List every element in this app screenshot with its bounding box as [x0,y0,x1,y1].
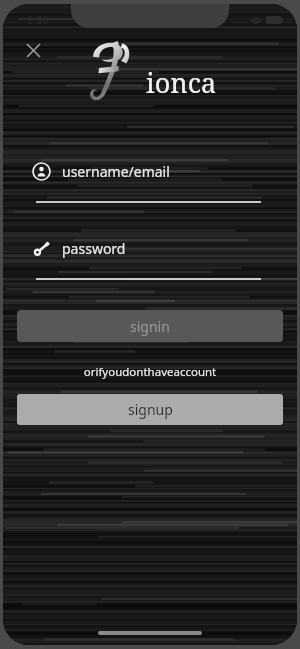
button[interactable]: signin [17,310,283,342]
staticText: password [62,239,126,258]
button[interactable]: username/email [3,154,297,188]
staticText: orifyoudonthaveaccount [3,364,297,380]
button[interactable]: password [3,231,297,265]
button[interactable]: Close [19,36,47,64]
staticText: 9:26 [27,12,49,27]
staticText: ionca [146,64,217,101]
staticText: signin [130,317,170,336]
staticText: username/email [62,162,170,181]
staticText: signup [128,400,173,419]
button[interactable]: signup [17,394,283,425]
